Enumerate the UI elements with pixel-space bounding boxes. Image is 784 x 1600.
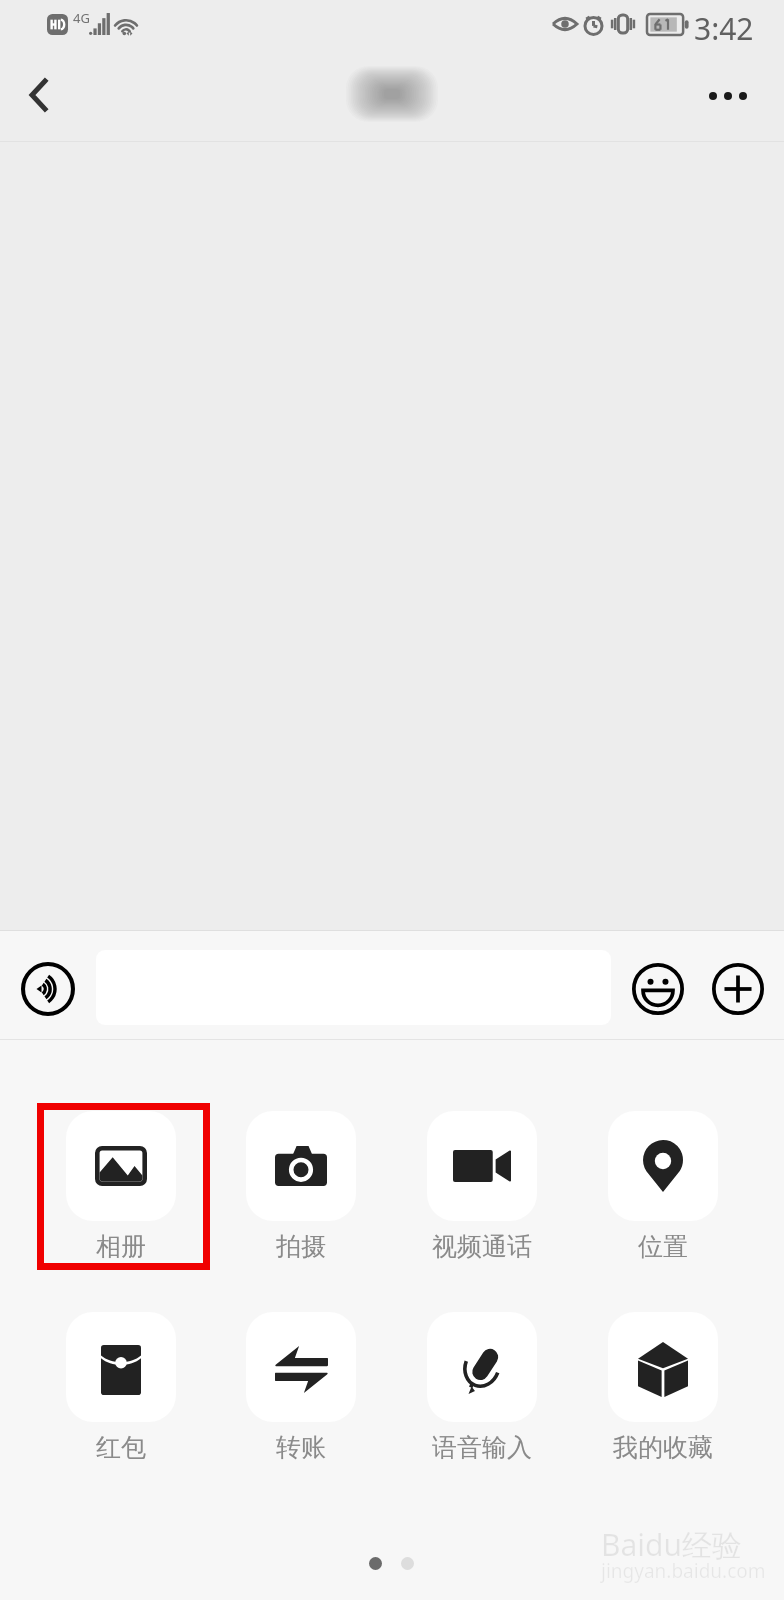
staticText: 红包 [96, 1432, 146, 1463]
button[interactable]: Emoji [626, 957, 690, 1021]
staticText: Baidu经验 [601, 1524, 743, 1565]
button[interactable]: 相册 [31, 1111, 211, 1286]
staticText: 3:42 [694, 8, 754, 49]
button[interactable]: More actions [706, 957, 770, 1021]
button[interactable]: 语音输入 [391, 1312, 572, 1487]
button[interactable]: 我的收藏 [572, 1312, 753, 1487]
staticText: 我的收藏 [613, 1432, 713, 1463]
button[interactable]: 位置 [572, 1111, 753, 1286]
staticText: 位置 [638, 1231, 688, 1262]
button[interactable]: More options [696, 66, 760, 126]
button[interactable]: 转账 [211, 1312, 391, 1487]
button[interactable]: Back [8, 65, 68, 125]
staticText: 4G [73, 9, 90, 27]
staticText: 语音输入 [432, 1432, 532, 1463]
staticText: 转账 [276, 1432, 326, 1463]
button[interactable]: Voice input [16, 957, 80, 1021]
staticText: 拍摄 [276, 1231, 326, 1262]
staticText: 相册 [96, 1231, 146, 1262]
staticText: 视频通话 [432, 1231, 532, 1262]
button[interactable]: 视频通话 [391, 1111, 572, 1286]
button[interactable]: 拍摄 [211, 1111, 391, 1286]
staticText: jingyan.baidu.com [601, 1558, 766, 1584]
button[interactable]: 红包 [31, 1312, 211, 1487]
